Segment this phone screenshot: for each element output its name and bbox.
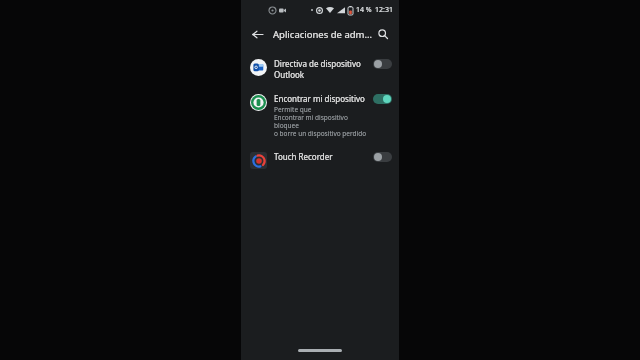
staticText: Outlook <box>274 69 305 80</box>
button[interactable]: Off <box>373 152 392 162</box>
staticText: Directiva de dispositivo <box>274 58 361 69</box>
staticText: Permite que Encontrar mi dispositivo blo… <box>274 105 367 138</box>
button[interactable]: Directiva de dispositivo <box>241 51 399 86</box>
staticText: 12:31 <box>375 5 393 15</box>
button[interactable]: Back <box>246 23 268 45</box>
button[interactable]: Encontrar mi dispositivo <box>241 86 399 144</box>
button[interactable]: On <box>373 94 392 104</box>
button[interactable]: Touch Recorder <box>241 144 399 175</box>
button[interactable]: Search <box>373 24 393 44</box>
staticText: 14 % <box>356 5 372 15</box>
staticText: Aplicaciones de adminis… <box>273 28 373 41</box>
staticText: Touch Recorder <box>274 151 333 162</box>
staticText: Encontrar mi dispositivo <box>274 93 365 104</box>
button[interactable]: Off <box>373 59 392 69</box>
